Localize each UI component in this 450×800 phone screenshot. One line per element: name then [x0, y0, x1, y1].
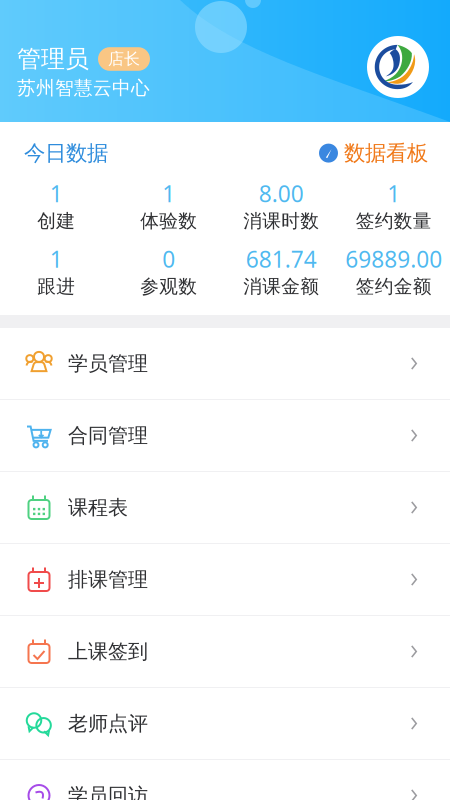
staticText: 跟进: [37, 275, 75, 298]
staticText: 0: [162, 244, 175, 274]
staticText: 1: [50, 244, 63, 274]
staticText: 体验数: [140, 210, 197, 232]
staticText: 苏州智慧云中心: [17, 76, 150, 99]
staticText: 排课管理: [68, 567, 148, 592]
staticText: 签约数量: [356, 210, 432, 232]
staticText: 参观数: [140, 275, 197, 298]
staticText: 消课金额: [243, 275, 319, 298]
staticText: 签约金额: [356, 275, 432, 298]
button[interactable]: 排课管理: [0, 544, 450, 615]
staticText: 合同管理: [68, 423, 148, 448]
staticText: 数据看板: [344, 140, 428, 166]
staticText: 1: [50, 178, 63, 209]
staticText: 老师点评: [68, 711, 148, 736]
staticText: 学员回访: [68, 783, 148, 800]
staticText: 管理员: [17, 44, 89, 74]
staticText: 8.00: [259, 178, 304, 209]
staticText: 69889.00: [345, 244, 442, 274]
staticText: 1: [387, 178, 400, 209]
button[interactable]: 上课签到: [0, 616, 450, 687]
button[interactable]: 老师点评: [0, 688, 450, 759]
button[interactable]: 学员管理: [0, 328, 450, 399]
staticText: 今日数据: [24, 140, 108, 166]
staticText: 上课签到: [68, 639, 148, 664]
staticText: 创建: [37, 210, 75, 232]
staticText: 学员管理: [68, 351, 148, 376]
button[interactable]: 课程表: [0, 472, 450, 543]
staticText: 课程表: [68, 495, 128, 520]
staticText: 店长: [108, 49, 140, 69]
staticText: 消课时数: [243, 210, 319, 232]
button[interactable]: 数据看板: [319, 140, 428, 166]
button[interactable]: 合同管理: [0, 400, 450, 471]
staticText: 1: [162, 178, 175, 209]
button[interactable]: 学员回访: [0, 760, 450, 800]
staticText: 681.74: [246, 244, 317, 274]
